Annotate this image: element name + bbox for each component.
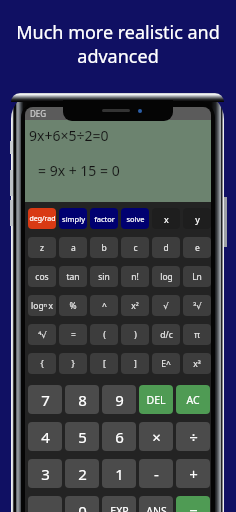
- button[interactable]: e: [183, 237, 211, 258]
- button[interactable]: AC: [176, 385, 210, 414]
- button[interactable]: {: [28, 353, 56, 374]
- button[interactable]: EXP: [102, 496, 136, 512]
- button[interactable]: ×: [139, 422, 173, 451]
- staticText: 8: [78, 390, 87, 410]
- button[interactable]: 1: [102, 459, 136, 488]
- button[interactable]: y: [183, 208, 211, 229]
- staticText: {: [40, 358, 44, 370]
- button[interactable]: .: [28, 496, 62, 512]
- button[interactable]: d/c: [152, 324, 180, 345]
- button[interactable]: 0: [65, 496, 99, 512]
- button[interactable]: DEL: [139, 385, 173, 414]
- button[interactable]: b: [90, 237, 118, 258]
- button[interactable]: 9: [102, 385, 136, 414]
- staticText: a: [71, 242, 76, 254]
- staticText: 2: [78, 464, 87, 484]
- button[interactable]: simply: [59, 208, 87, 229]
- button[interactable]: 5: [65, 422, 99, 451]
- staticText: %: [69, 300, 77, 312]
- staticText: 1: [115, 464, 124, 484]
- staticText: +: [189, 464, 198, 484]
- staticText: 9: [115, 390, 124, 410]
- staticText: x³: [193, 358, 201, 370]
- staticText: tan: [66, 271, 80, 283]
- staticText: √: [163, 301, 169, 311]
- staticText: }: [71, 358, 75, 370]
- staticText: logⁿ x: [31, 300, 53, 312]
- button[interactable]: logⁿ x: [28, 295, 56, 316]
- button[interactable]: sin: [90, 266, 118, 287]
- button[interactable]: (: [90, 324, 118, 345]
- staticText: =: [189, 501, 198, 512]
- staticText: ): [134, 329, 137, 341]
- staticText: Much more realistic and advanced: [0, 20, 236, 68]
- button[interactable]: E^: [152, 353, 180, 374]
- button[interactable]: 4: [28, 422, 62, 451]
- button[interactable]: 8: [65, 385, 99, 414]
- staticText: d: [163, 242, 169, 254]
- button[interactable]: 6: [102, 422, 136, 451]
- staticText: DEG: [30, 108, 47, 119]
- staticText: log: [160, 271, 173, 283]
- staticText: ANS: [146, 504, 167, 512]
- staticText: (: [103, 329, 106, 341]
- staticText: e: [195, 242, 200, 254]
- button[interactable]: %: [59, 295, 87, 316]
- staticText: factor: [94, 214, 115, 224]
- staticText: DEL: [146, 393, 166, 407]
- staticText: ^: [102, 300, 107, 312]
- button[interactable]: ]: [121, 353, 149, 374]
- staticText: 7: [41, 390, 50, 410]
- button[interactable]: n!: [121, 266, 149, 287]
- button[interactable]: ⁴√: [28, 324, 56, 345]
- staticText: EXP: [110, 504, 129, 512]
- staticText: simply: [62, 214, 85, 224]
- button[interactable]: ): [121, 324, 149, 345]
- button[interactable]: -: [139, 459, 173, 488]
- button[interactable]: Ln: [183, 266, 211, 287]
- staticText: y: [195, 213, 200, 225]
- staticText: solve: [126, 214, 145, 224]
- button[interactable]: solve: [121, 208, 149, 229]
- button[interactable]: =: [176, 496, 210, 512]
- staticText: x²: [131, 300, 139, 312]
- button[interactable]: +: [176, 459, 210, 488]
- staticText: d/c: [160, 329, 173, 341]
- button[interactable]: log: [152, 266, 180, 287]
- button[interactable]: tan: [59, 266, 87, 287]
- staticText: ³√: [193, 300, 202, 312]
- button[interactable]: a: [59, 237, 87, 258]
- button[interactable]: π: [183, 324, 211, 345]
- button[interactable]: c: [121, 237, 149, 258]
- button[interactable]: z: [28, 237, 56, 258]
- button[interactable]: d: [152, 237, 180, 258]
- button[interactable]: 3: [28, 459, 62, 488]
- button[interactable]: ³√: [183, 295, 211, 316]
- button[interactable]: deg/rad: [28, 208, 56, 229]
- staticText: 4: [41, 427, 50, 447]
- button[interactable]: x: [152, 208, 180, 229]
- button[interactable]: }: [59, 353, 87, 374]
- button[interactable]: ÷: [176, 422, 210, 451]
- button[interactable]: x²: [121, 295, 149, 316]
- button[interactable]: 2: [65, 459, 99, 488]
- button[interactable]: factor: [90, 208, 118, 229]
- button[interactable]: ^: [90, 295, 118, 316]
- staticText: sin: [98, 271, 110, 283]
- staticText: =: [71, 329, 76, 341]
- staticText: x: [164, 213, 169, 225]
- button[interactable]: =: [59, 324, 87, 345]
- staticText: 0: [78, 501, 87, 512]
- staticText: ÷: [189, 427, 198, 447]
- staticText: n!: [131, 271, 139, 283]
- button[interactable]: [: [90, 353, 118, 374]
- button[interactable]: 7: [28, 385, 62, 414]
- staticText: π: [194, 329, 200, 341]
- button[interactable]: cos: [28, 266, 56, 287]
- staticText: 6: [115, 427, 124, 447]
- button[interactable]: x³: [183, 353, 211, 374]
- button[interactable]: ANS: [139, 496, 173, 512]
- staticText: b: [101, 242, 107, 254]
- button[interactable]: √: [152, 295, 180, 316]
- staticText: AC: [186, 393, 200, 407]
